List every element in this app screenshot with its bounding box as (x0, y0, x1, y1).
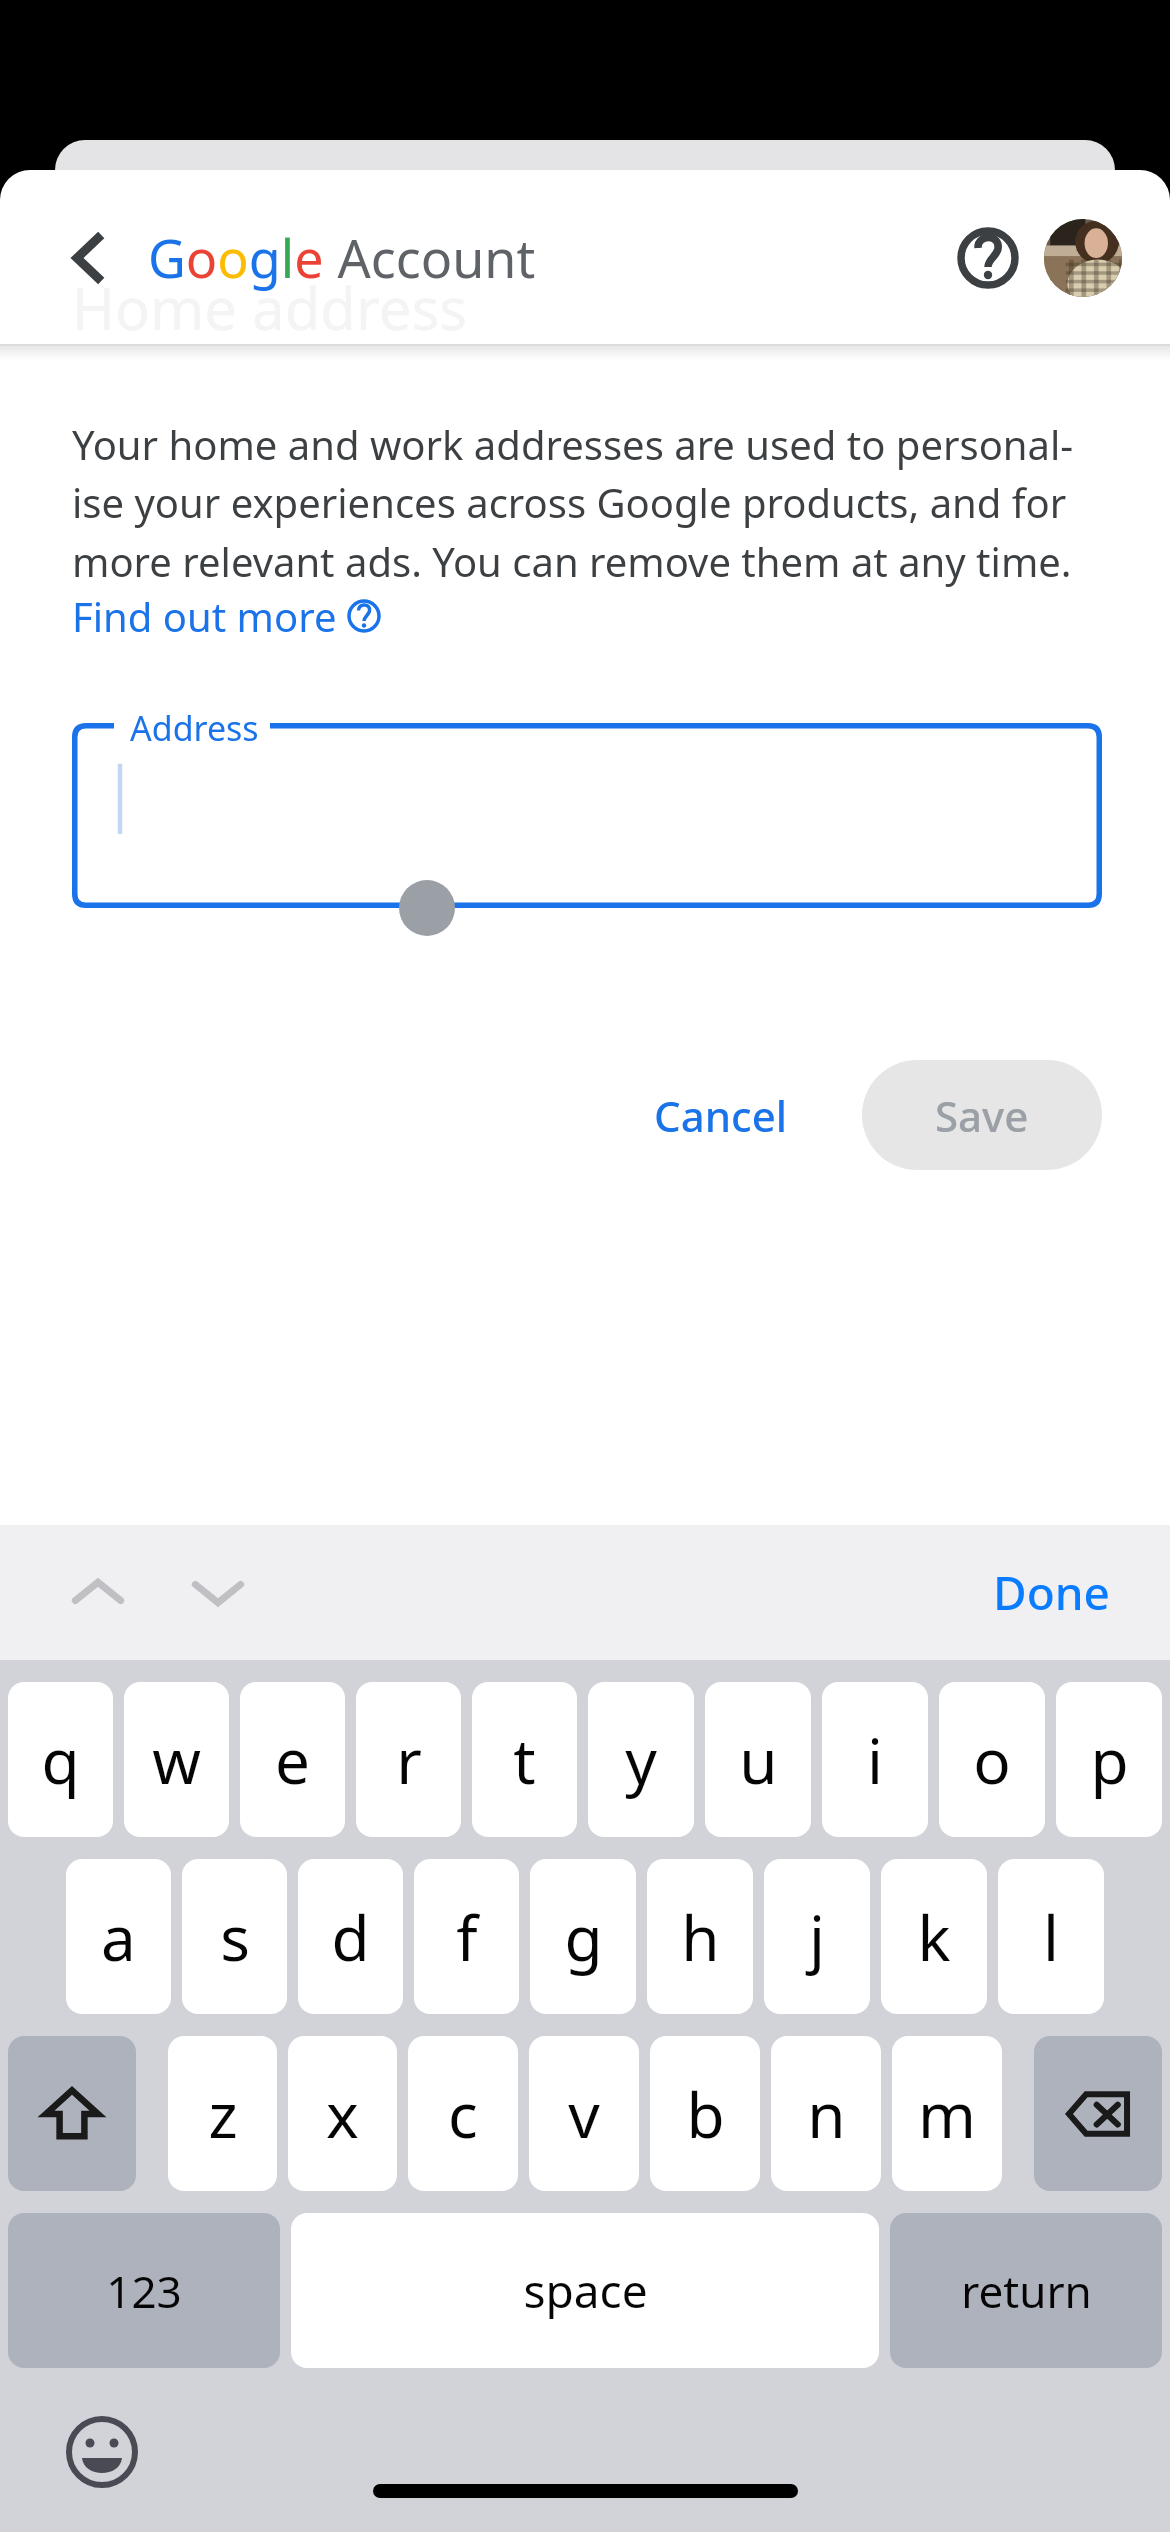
button[interactable]: q (8, 1682, 113, 1837)
staticText: f (456, 1895, 478, 1979)
staticText: Google (148, 222, 324, 293)
button[interactable]: Backspace (1034, 2036, 1162, 2191)
staticText: l (1043, 1895, 1059, 1979)
staticText: return (961, 2261, 1092, 2321)
button[interactable]: s (182, 1859, 287, 2014)
button[interactable]: i (822, 1682, 928, 1837)
button[interactable]: t (472, 1682, 577, 1837)
button[interactable]: Save (862, 1060, 1102, 1170)
staticText: p (1090, 1718, 1129, 1802)
staticText: z (208, 2072, 238, 2156)
button[interactable]: Cancel (620, 1065, 822, 1166)
button[interactable]: n (771, 2036, 881, 2191)
staticText: Done (993, 1561, 1110, 1624)
staticText: k (917, 1895, 951, 1979)
button[interactable]: u (705, 1682, 811, 1837)
button[interactable]: Next field (170, 1545, 266, 1641)
staticText: v (568, 2072, 600, 2156)
button[interactable]: Help (942, 212, 1034, 304)
staticText: space (523, 2259, 648, 2322)
button[interactable]: l (998, 1859, 1104, 2014)
staticText: j (809, 1895, 825, 1979)
button[interactable]: return (890, 2213, 1162, 2368)
staticText: i (867, 1718, 883, 1802)
staticText: w (152, 1718, 201, 1802)
staticText: d (331, 1895, 370, 1979)
staticText: Address (130, 705, 259, 751)
button[interactable]: w (124, 1682, 229, 1837)
staticText: c (448, 2072, 478, 2156)
staticText: Save (935, 1087, 1029, 1144)
staticText: y (625, 1718, 657, 1802)
button[interactable]: p (1056, 1682, 1162, 1837)
button[interactable]: 123 (8, 2213, 280, 2368)
staticText: 123 (106, 2261, 182, 2321)
staticText: Find out more (72, 589, 337, 643)
button[interactable]: d (298, 1859, 403, 2014)
button[interactable]: m (892, 2036, 1002, 2191)
button[interactable]: g (530, 1859, 636, 2014)
button[interactable]: z (168, 2036, 277, 2191)
button[interactable]: Emoji keyboard (52, 2402, 152, 2502)
button[interactable]: Back (50, 219, 128, 297)
button[interactable]: c (408, 2036, 518, 2191)
staticText: q (41, 1718, 80, 1802)
button[interactable]: y (588, 1682, 694, 1837)
staticText: x (326, 2072, 359, 2156)
button[interactable]: b (650, 2036, 760, 2191)
button[interactable]: o (939, 1682, 1045, 1837)
staticText: Cancel (654, 1087, 788, 1144)
staticText: o (973, 1718, 1011, 1802)
button[interactable]: j (764, 1859, 870, 2014)
button[interactable]: k (881, 1859, 987, 2014)
button[interactable]: h (647, 1859, 753, 2014)
staticText: b (686, 2072, 725, 2156)
button[interactable]: a (66, 1859, 171, 2014)
button[interactable]: Shift (8, 2036, 136, 2191)
staticText: t (513, 1718, 536, 1802)
staticText: r (396, 1718, 422, 1802)
button[interactable]: Done (975, 1547, 1128, 1638)
staticText: h (681, 1895, 720, 1979)
button[interactable]: x (288, 2036, 397, 2191)
staticText: Your home and work addresses are used to… (72, 417, 1074, 589)
button[interactable]: space (291, 2213, 879, 2368)
staticText: a (101, 1895, 136, 1979)
staticText: m (918, 2072, 976, 2156)
staticText: e (275, 1718, 310, 1802)
staticText: s (220, 1895, 250, 1979)
staticText: n (807, 2072, 846, 2156)
button[interactable]: e (240, 1682, 345, 1837)
button[interactable]: r (356, 1682, 461, 1837)
button[interactable]: v (529, 2036, 639, 2191)
staticText: Account (324, 222, 536, 293)
staticText: u (739, 1718, 778, 1802)
staticText: Home address (72, 268, 468, 347)
button[interactable]: Google Account profile (1044, 219, 1122, 297)
button[interactable]: Find out more (72, 589, 381, 643)
button[interactable]: Previous field (50, 1545, 146, 1641)
staticText: g (564, 1895, 603, 1979)
button[interactable]: f (414, 1859, 519, 2014)
